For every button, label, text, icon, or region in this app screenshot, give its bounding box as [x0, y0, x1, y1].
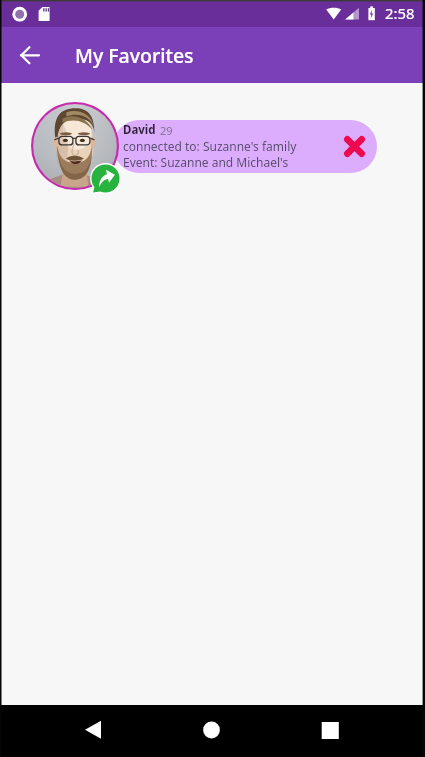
button[interactable]: David	[0, 83, 425, 213]
staticText: David	[123, 122, 156, 138]
staticText: My Favorites	[75, 42, 194, 69]
button[interactable]: Recent apps	[306, 707, 354, 755]
button[interactable]: Remove favorite	[336, 128, 373, 165]
button[interactable]: David avatar	[30, 101, 120, 191]
button[interactable]: Back	[69, 707, 117, 755]
staticText: 29	[160, 123, 173, 138]
staticText: 2:58	[385, 3, 415, 23]
staticText: Event: Suzanne and Michael's	[123, 154, 289, 170]
button[interactable]: Home	[187, 707, 235, 755]
staticText: connected to: Suzanne's family	[123, 138, 297, 154]
button[interactable]: Share	[90, 163, 121, 194]
button[interactable]: Back	[10, 35, 50, 75]
